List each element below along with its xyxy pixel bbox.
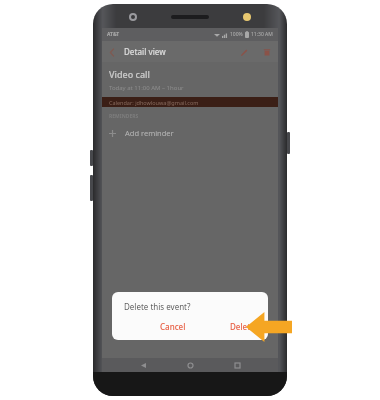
button[interactable]: Back [105, 45, 119, 59]
staticText: AT&T [107, 31, 120, 38]
staticText: REMINDERS [109, 113, 139, 120]
button[interactable]: Edit [237, 45, 250, 58]
staticText: Add reminder [125, 128, 174, 138]
staticText: Delete [230, 321, 255, 332]
staticText: Calendar: jdhowlouwa@gmail.com [109, 99, 199, 106]
staticText: 11:30 AM [251, 31, 273, 38]
staticText: Detail view [124, 46, 166, 57]
staticText: 100% [230, 31, 243, 38]
button[interactable]: Delete [221, 317, 264, 336]
staticText: Today at 11:00 AM – 1hour [109, 84, 184, 92]
button[interactable]: Cancel [151, 317, 195, 336]
button[interactable]: Add reminder [102, 126, 278, 140]
button[interactable]: Delete [260, 45, 273, 58]
button[interactable]: Recent apps [231, 359, 243, 371]
button[interactable]: Back [137, 359, 149, 371]
button[interactable]: Calendar: jdhowlouwa@gmail.com [102, 97, 278, 107]
staticText: Cancel [160, 321, 186, 332]
staticText: Delete this event? [124, 301, 191, 312]
staticText: Video call [109, 68, 150, 80]
button[interactable]: Home [184, 359, 196, 371]
